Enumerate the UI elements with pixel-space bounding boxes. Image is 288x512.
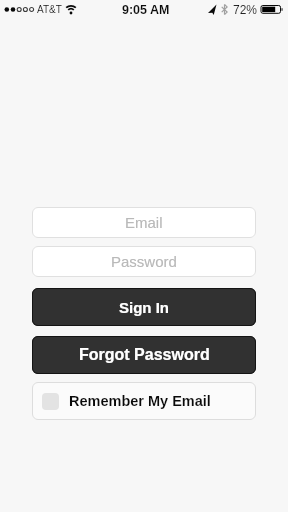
staticText: Remember My Email (69, 393, 211, 409)
button[interactable]: Email (32, 207, 256, 238)
staticText: AT&T (37, 4, 62, 15)
staticText: Email (125, 214, 163, 231)
staticText: 72% (233, 3, 258, 16)
staticText: Forgot Password (79, 346, 210, 364)
button[interactable]: Sign In (32, 288, 256, 326)
staticText: Password (111, 253, 177, 270)
button[interactable]: Remember My Email (32, 382, 256, 420)
button[interactable]: Forgot Password (32, 336, 256, 374)
staticText: Sign In (119, 299, 169, 316)
staticText: 9:05 AM (122, 3, 170, 17)
button[interactable]: Password (32, 246, 256, 277)
